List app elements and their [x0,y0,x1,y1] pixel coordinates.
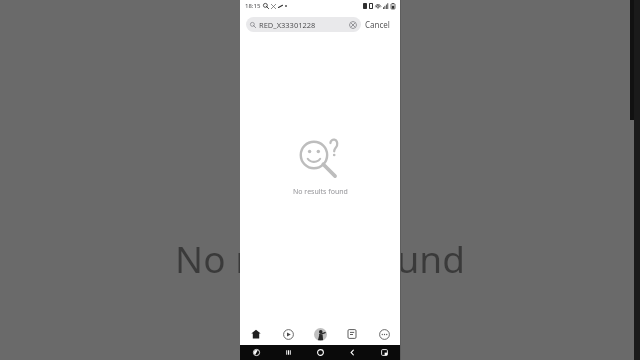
button[interactable]: Cancel [361,16,394,33]
button[interactable]: Notes [336,323,368,345]
button[interactable]: Clear search [349,21,357,29]
button[interactable]: Screenshot [368,345,400,360]
button[interactable]: Profile [304,323,336,345]
button[interactable]: Recents [272,345,304,360]
staticText: Cancel [365,19,390,30]
button[interactable]: Back [336,345,368,360]
button[interactable]: Home [304,345,336,360]
button[interactable]: RED_X33301228 [246,17,361,32]
button[interactable]: Home [240,323,272,345]
staticText: No results found [175,233,465,283]
button[interactable]: Reels [272,323,304,345]
staticText: No results found [293,187,348,197]
staticText: 18:15 [245,2,261,10]
button[interactable]: More [368,323,400,345]
staticText: RED_X33301228 [259,20,316,30]
button[interactable]: Accessibility [240,345,272,360]
